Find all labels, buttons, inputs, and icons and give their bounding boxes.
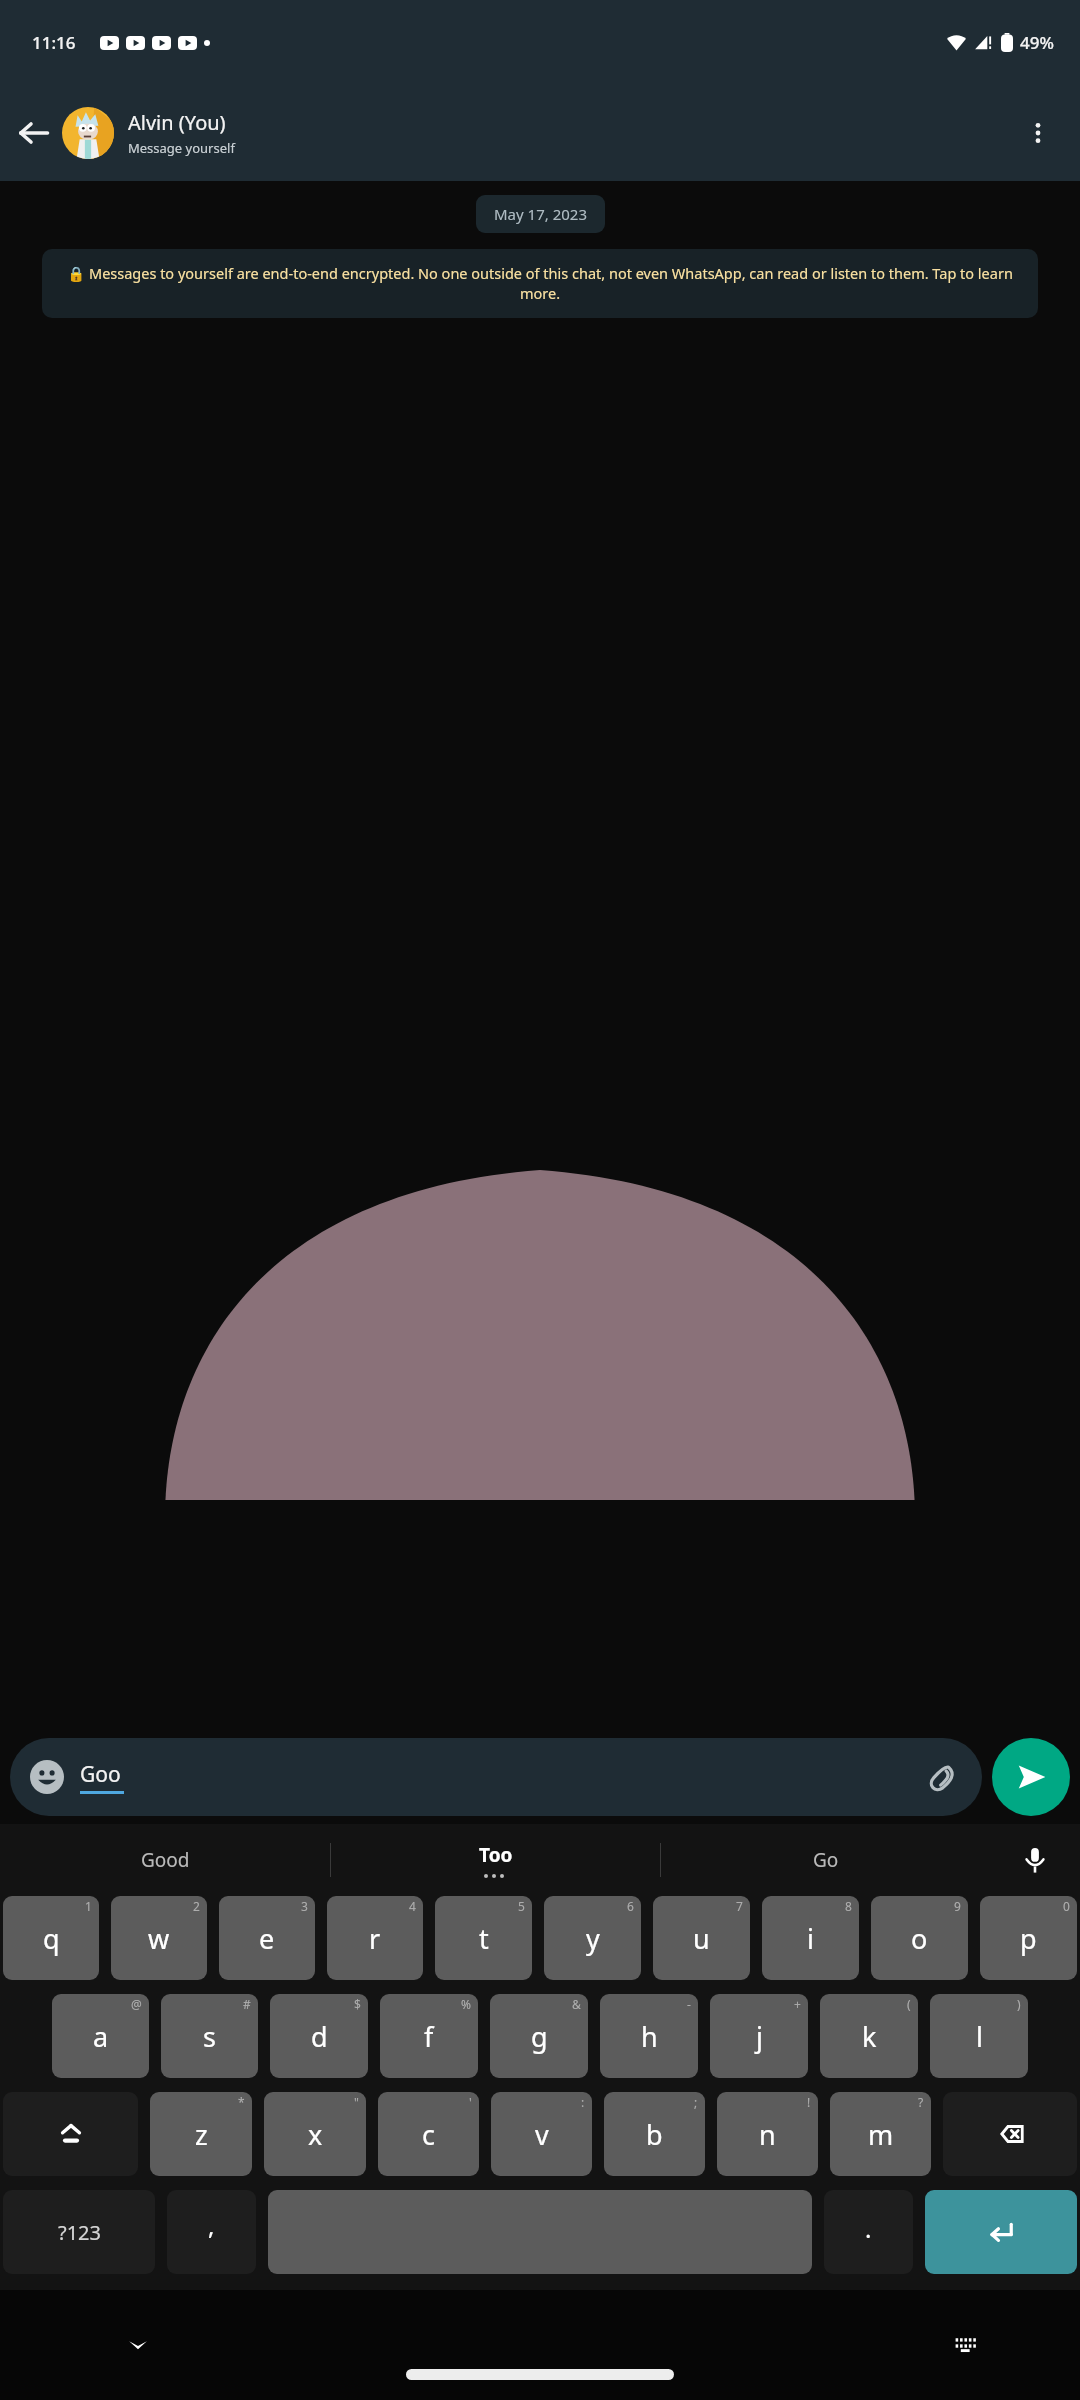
button[interactable]: i — [762, 1896, 859, 1980]
button[interactable]: Backspace — [943, 2092, 1077, 2176]
button[interactable]: Go — [661, 1824, 990, 1896]
staticText: i — [807, 1920, 814, 1957]
staticText: x — [308, 2116, 323, 2153]
staticText: 9 — [954, 1898, 961, 1914]
staticText: Alvin (You) — [128, 109, 226, 136]
staticText: ; — [694, 2094, 698, 2110]
button[interactable]: l — [930, 1994, 1028, 2078]
staticText: a — [93, 2018, 109, 2055]
staticText: ?123 — [58, 2219, 101, 2246]
staticText: r — [369, 1920, 381, 1957]
staticText: q — [43, 1920, 60, 1957]
staticText: Good — [141, 1847, 190, 1873]
staticText: May 17, 2023 — [494, 204, 587, 224]
button[interactable]: a — [52, 1994, 149, 2078]
button[interactable]: May 17, 2023 — [476, 195, 605, 233]
staticText: ) — [1017, 1996, 1021, 2012]
staticText: e — [259, 1920, 275, 1957]
button[interactable]: v — [491, 2092, 592, 2176]
staticText: s — [203, 2018, 216, 2055]
button[interactable]: Alvin (You) — [62, 85, 1010, 181]
button[interactable]: More options — [1010, 105, 1066, 161]
staticText: @ — [131, 1996, 142, 2012]
button[interactable]: Home — [406, 2369, 674, 2380]
button[interactable]: y — [544, 1896, 641, 1980]
staticText: ( — [907, 1996, 911, 2012]
button[interactable]: e — [219, 1896, 315, 1980]
staticText: u — [693, 1920, 710, 1957]
button[interactable]: . — [824, 2190, 913, 2274]
staticText: ? — [918, 2094, 924, 2110]
button[interactable]: m — [830, 2092, 931, 2176]
staticText: 4 — [409, 1898, 416, 1914]
staticText: g — [531, 2018, 548, 2055]
button[interactable]: w — [111, 1896, 207, 1980]
staticText: 🔒 Messages to yourself are end-to-end en… — [60, 263, 1020, 304]
staticText: h — [641, 2018, 658, 2055]
button[interactable]: c — [378, 2092, 479, 2176]
staticText: 49% — [1020, 31, 1054, 54]
staticText: t — [479, 1920, 489, 1957]
staticText: b — [646, 2116, 663, 2153]
staticText: : — [581, 2094, 585, 2110]
staticText: " — [354, 2094, 359, 2110]
staticText: k — [862, 2018, 877, 2055]
button[interactable]: z — [150, 2092, 252, 2176]
button[interactable]: Attach — [918, 1753, 966, 1801]
staticText: 5 — [518, 1898, 525, 1914]
staticText: c — [422, 2116, 435, 2153]
staticText: j — [756, 2018, 763, 2055]
button[interactable]: f — [380, 1994, 478, 2078]
button[interactable]: Hide keyboard — [110, 2317, 166, 2373]
staticText: m — [868, 2116, 894, 2153]
staticText: 0 — [1063, 1898, 1070, 1914]
button[interactable]: Emoji — [10, 1738, 982, 1816]
button[interactable]: t — [435, 1896, 532, 1980]
staticText: 3 — [301, 1898, 308, 1914]
staticText: n — [759, 2116, 776, 2153]
button[interactable]: Voice input — [990, 1824, 1080, 1896]
staticText: - — [687, 1996, 691, 2012]
button[interactable]: b — [604, 2092, 705, 2176]
button[interactable]: Enter — [925, 2190, 1077, 2274]
button[interactable]: d — [270, 1994, 368, 2078]
button[interactable]: Good — [0, 1824, 330, 1896]
button[interactable]: n — [717, 2092, 818, 2176]
staticText: ! — [807, 2094, 811, 2110]
staticText: 8 — [845, 1898, 852, 1914]
button[interactable]: , — [167, 2190, 256, 2274]
button[interactable]: x — [264, 2092, 366, 2176]
button[interactable]: u — [653, 1896, 750, 1980]
button[interactable]: r — [327, 1896, 423, 1980]
button[interactable]: ?123 — [3, 2190, 155, 2274]
staticText: p — [1020, 1920, 1037, 1957]
button[interactable]: j — [710, 1994, 808, 2078]
button[interactable]: Send — [992, 1738, 1070, 1816]
button[interactable]: Too — [331, 1824, 660, 1896]
staticText: ' — [469, 2094, 472, 2110]
button[interactable]: k — [820, 1994, 918, 2078]
button[interactable]: q — [3, 1896, 99, 1980]
staticText: l — [976, 2018, 983, 2055]
button[interactable]: h — [600, 1994, 698, 2078]
button[interactable]: g — [490, 1994, 588, 2078]
staticText: Message yourself — [128, 139, 235, 157]
button[interactable]: Back — [6, 105, 62, 161]
button[interactable]: s — [161, 1994, 258, 2078]
button[interactable]: p — [980, 1896, 1077, 1980]
staticText: Goo — [80, 1760, 121, 1789]
staticText: 6 — [627, 1898, 634, 1914]
staticText: & — [572, 1996, 581, 2012]
staticText: d — [311, 2018, 328, 2055]
staticText: f — [424, 2018, 434, 2055]
button[interactable]: Shift — [3, 2092, 138, 2176]
staticText: # — [243, 1996, 251, 2012]
button[interactable]: 🔒 Messages to yourself are end-to-end en… — [42, 249, 1038, 318]
staticText: v — [535, 2116, 549, 2153]
button[interactable]: Emoji — [26, 1756, 68, 1798]
staticText: % — [461, 1996, 471, 2012]
button[interactable]: o — [871, 1896, 968, 1980]
staticText: , — [208, 2209, 215, 2242]
button[interactable]: Switch keyboard — [938, 2317, 994, 2373]
